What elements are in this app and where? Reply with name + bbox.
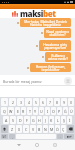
- staticText: bet: [43, 8, 56, 19]
- staticText: Y: [34, 109, 37, 114]
- button[interactable]: Ğ: [63, 107, 68, 115]
- staticText: Merhaba, Maksibet Destek Hattına hoşgeld…: [22, 19, 69, 27]
- button[interactable]: Backspace: [67, 125, 74, 133]
- button[interactable]: B: [37, 125, 42, 133]
- staticText: 4: [28, 100, 30, 105]
- button[interactable]: Hemen iletiyorum, teşekkürler: [30, 63, 71, 72]
- button[interactable]: C: [23, 125, 29, 133]
- button[interactable]: Q: [1, 107, 7, 115]
- button[interactable]: Hesabıma giriş yapamıyorum: [39, 40, 71, 51]
- button[interactable]: Enter: [64, 134, 74, 139]
- staticText: M: [50, 127, 54, 132]
- button[interactable]: Kullanıcı adınız nedir?: [45, 52, 71, 62]
- staticText: Ü: [70, 109, 73, 114]
- button[interactable]: H: [37, 116, 42, 124]
- staticText: D: [19, 118, 22, 123]
- button[interactable]: Shift: [1, 125, 8, 133]
- staticText: !#1: [2, 135, 7, 139]
- button[interactable]: P: [57, 107, 62, 115]
- button[interactable]: R: [21, 107, 26, 115]
- button[interactable]: 1: [1, 98, 8, 106]
- staticText: maksi: [20, 8, 43, 19]
- button[interactable]: I: [45, 107, 50, 115]
- staticText: Ç: [62, 127, 65, 132]
- staticText: 9: [63, 100, 65, 105]
- staticText: 7: [49, 100, 51, 105]
- button[interactable]: D: [17, 116, 23, 124]
- staticText: N: [44, 127, 47, 132]
- staticText: Ö: [56, 127, 59, 132]
- button[interactable]: S: [10, 116, 16, 124]
- button[interactable]: !#1: [1, 134, 8, 139]
- staticText: Nasıl yardımcı olabilirim?: [46, 29, 69, 37]
- staticText: W: [9, 109, 13, 114]
- button[interactable]: Z: [9, 125, 15, 133]
- staticText: E: [17, 109, 19, 114]
- button[interactable]: O: [51, 107, 56, 115]
- button[interactable]: M: [49, 125, 54, 133]
- button[interactable]: W: [8, 107, 14, 115]
- button[interactable]: T: [27, 107, 32, 115]
- button[interactable]: 5: [33, 98, 39, 106]
- staticText: S: [12, 118, 14, 123]
- button[interactable]: More options: [64, 77, 72, 85]
- staticText: Burada bir mesaj yazınız: [3, 79, 42, 84]
- staticText: 1: [4, 100, 6, 105]
- button[interactable]: K: [49, 116, 54, 124]
- button[interactable]: N: [43, 125, 48, 133]
- button[interactable]: Ş: [61, 116, 66, 124]
- staticText: Ş: [63, 118, 65, 123]
- staticText: 6: [42, 100, 44, 105]
- button[interactable]: 3: [17, 98, 24, 106]
- staticText: H: [38, 118, 41, 123]
- button[interactable]: Y: [33, 107, 38, 115]
- button[interactable]: 0: [68, 98, 74, 106]
- button[interactable]: Ü: [69, 107, 74, 115]
- button[interactable]: 4: [25, 98, 32, 106]
- staticText: O: [52, 109, 55, 114]
- button[interactable]: F: [24, 116, 30, 124]
- staticText: 0: [70, 100, 72, 105]
- button[interactable]: 8: [54, 98, 60, 106]
- staticText: Hesabıma giriş yapamıyorum: [41, 42, 69, 50]
- staticText: Z: [11, 127, 14, 132]
- staticText: G: [32, 118, 35, 123]
- button[interactable]: A: [3, 116, 9, 124]
- button[interactable]: U: [39, 107, 44, 115]
- staticText: K: [50, 118, 53, 123]
- button[interactable]: 9: [61, 98, 67, 106]
- button[interactable]: 2: [9, 98, 16, 106]
- staticText: P: [58, 109, 61, 114]
- staticText: X: [18, 127, 21, 132]
- button[interactable]: E: [15, 107, 20, 115]
- staticText: L: [57, 118, 59, 123]
- button[interactable]: İ: [67, 116, 72, 124]
- button[interactable]: X: [16, 125, 22, 133]
- button[interactable]: 7: [47, 98, 53, 106]
- staticText: 5: [35, 100, 37, 105]
- button[interactable]: V: [30, 125, 36, 133]
- button[interactable]: Ç: [61, 125, 66, 133]
- staticText: 2: [12, 100, 14, 105]
- staticText: U: [40, 109, 43, 114]
- staticText: R: [22, 109, 25, 114]
- button[interactable]: 6: [40, 98, 46, 106]
- button[interactable]: Merhaba, Maksibet Destek Hattına hoşgeld…: [20, 18, 71, 27]
- button[interactable]: ,: [9, 134, 15, 139]
- button[interactable]: Recent apps: [51, 141, 59, 149]
- staticText: 3: [20, 100, 22, 105]
- button[interactable]: G: [31, 116, 36, 124]
- button[interactable]: .: [57, 134, 63, 139]
- staticText: Ğ: [64, 109, 67, 114]
- staticText: .: [60, 135, 61, 139]
- staticText: Kullanıcı adınız nedir?: [47, 53, 69, 61]
- button[interactable]: J: [43, 116, 48, 124]
- staticText: J: [45, 118, 46, 123]
- staticText: ,: [12, 135, 13, 139]
- button[interactable]: L: [55, 116, 60, 124]
- button[interactable]: Ö: [55, 125, 60, 133]
- button[interactable]: Back: [15, 141, 23, 149]
- button[interactable]: Nasıl yardımcı olabilirim?: [44, 28, 71, 38]
- button[interactable]: Home: [33, 141, 41, 149]
